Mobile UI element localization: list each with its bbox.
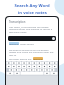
staticText: notes found [20,42,34,45]
staticText: we need to follow up on the design revie… [9,48,55,57]
button[interactable]: Keyboard [6,61,58,85]
staticText: Search Any Word [14,3,50,9]
staticText: the team before the [9,57,32,60]
staticText: Hey there, I just finished the review me… [9,25,55,34]
staticText: meeting [9,42,19,45]
button[interactable]: Search [8,36,56,41]
staticText: in voice notes [18,10,47,16]
staticText: ends on friday afternoon [9,60,37,63]
staticText: meeting [33,57,43,60]
staticText: Transcription [9,20,26,24]
